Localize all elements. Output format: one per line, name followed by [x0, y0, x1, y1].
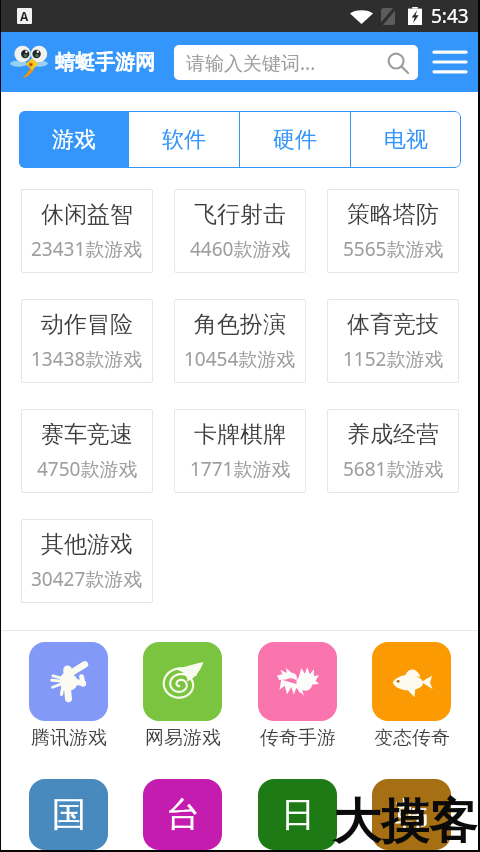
button[interactable]: 韩 — [372, 779, 451, 850]
button[interactable]: 传奇手游 — [258, 642, 337, 750]
button[interactable]: 体育竞技 — [327, 299, 459, 383]
staticText: 腾讯游戏 — [31, 726, 107, 750]
button[interactable]: 动作冒险 — [21, 299, 153, 383]
staticText: 体育竞技 — [347, 310, 439, 339]
button[interactable]: 角色扮演 — [174, 299, 306, 383]
staticText: 飞行射击 — [194, 200, 286, 229]
staticText: 电视 — [384, 126, 428, 154]
button[interactable]: 电视 — [351, 111, 461, 168]
button[interactable]: 台 — [143, 779, 222, 850]
staticText: 其他游戏 — [41, 530, 133, 559]
staticText: 13438款游戏 — [31, 346, 143, 372]
button[interactable]: 游戏 — [19, 111, 128, 168]
staticText: 台 — [166, 793, 200, 836]
staticText: 1771款游戏 — [190, 456, 291, 482]
staticText: 23431款游戏 — [31, 236, 143, 262]
staticText: 卡牌棋牌 — [194, 420, 286, 449]
staticText: 硬件 — [273, 126, 317, 154]
staticText: 角色扮演 — [194, 310, 286, 339]
staticText: 策略塔防 — [347, 200, 439, 229]
button[interactable]: 网易游戏 — [143, 642, 222, 750]
staticText: 网易游戏 — [145, 726, 221, 750]
staticText: 1152款游戏 — [343, 346, 444, 372]
button[interactable]: 卡牌棋牌 — [174, 409, 306, 493]
staticText: 蜻蜓手游网 — [55, 50, 155, 75]
staticText: 变态传奇 — [374, 726, 450, 750]
button[interactable]: 日 — [258, 779, 337, 850]
staticText: 日 — [281, 793, 315, 836]
button[interactable]: 其他游戏 — [21, 519, 153, 603]
staticText: 游戏 — [52, 126, 96, 154]
button[interactable]: 赛车竞速 — [21, 409, 153, 493]
staticText: 5:43 — [431, 3, 469, 29]
staticText: 30427款游戏 — [31, 566, 143, 592]
staticText: 大摸客 — [333, 792, 477, 852]
staticText: 赛车竞速 — [41, 420, 133, 449]
button[interactable]: 请输入关键词... — [174, 45, 418, 80]
button[interactable]: 国 — [29, 779, 108, 850]
staticText: A — [20, 8, 29, 24]
staticText: 4460款游戏 — [190, 236, 291, 262]
staticText: 4750款游戏 — [37, 456, 138, 482]
button[interactable]: 硬件 — [240, 111, 350, 168]
staticText: 5681款游戏 — [343, 456, 444, 482]
button[interactable]: 软件 — [129, 111, 239, 168]
staticText: 休闲益智 — [41, 200, 133, 229]
button[interactable]: 腾讯游戏 — [29, 642, 108, 750]
button[interactable]: 养成经营 — [327, 409, 459, 493]
button[interactable]: 飞行射击 — [174, 189, 306, 273]
staticText: 软件 — [162, 126, 206, 154]
staticText: 传奇手游 — [260, 726, 336, 750]
staticText: 国 — [52, 793, 86, 836]
staticText: 5565款游戏 — [343, 236, 444, 262]
button[interactable]: Menu — [426, 38, 474, 86]
button[interactable]: 策略塔防 — [327, 189, 459, 273]
staticText: 动作冒险 — [41, 310, 133, 339]
staticText: 请输入关键词... — [186, 50, 316, 76]
button[interactable]: 变态传奇 — [372, 642, 451, 750]
staticText: 养成经营 — [347, 420, 439, 449]
staticText: 韩 — [395, 793, 429, 836]
staticText: 10454款游戏 — [184, 346, 296, 372]
button[interactable]: 休闲益智 — [21, 189, 153, 273]
